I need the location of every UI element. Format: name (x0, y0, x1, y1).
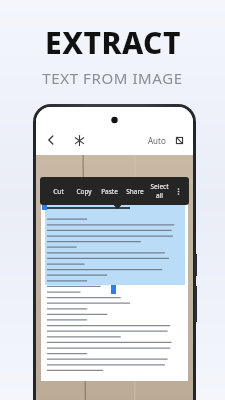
staticText: Auto (148, 135, 166, 146)
button[interactable]: More options (173, 185, 183, 197)
button[interactable]: Cut (46, 187, 70, 196)
staticText: TEXT FROM IMAGE (42, 68, 183, 88)
button[interactable]: Copy (72, 187, 96, 196)
button[interactable]: Crop (172, 133, 186, 147)
staticText: Select all (148, 182, 171, 200)
button[interactable]: Paste (98, 187, 121, 196)
button[interactable]: Share (123, 187, 146, 196)
staticText: Paste (101, 187, 118, 196)
button[interactable]: Auto (148, 135, 166, 146)
button[interactable]: Back (42, 131, 60, 149)
staticText: Share (126, 187, 144, 196)
staticText: Copy (76, 187, 92, 196)
staticText: EXTRACT (45, 22, 181, 63)
button[interactable]: Select all (148, 182, 171, 200)
button[interactable]: Flash (70, 131, 88, 149)
staticText: Cut (53, 187, 64, 196)
